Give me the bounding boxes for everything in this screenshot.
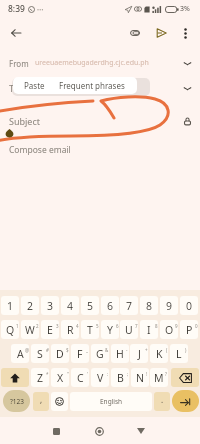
button[interactable]: P: [180, 320, 198, 339]
staticText: _: [86, 347, 88, 353]
staticText: P: [186, 323, 193, 337]
staticText: 7: [126, 299, 133, 313]
button[interactable]: Recent apps: [44, 419, 68, 443]
staticText: N: [136, 371, 144, 385]
button[interactable]: 9: [160, 296, 178, 315]
button[interactable]: T: [81, 320, 99, 339]
button[interactable]: X: [51, 368, 69, 387]
staticText: ?123: [10, 397, 24, 406]
button[interactable]: Shift: [1, 368, 29, 387]
staticText: Z: [37, 371, 44, 385]
staticText: @: [25, 347, 29, 353]
button[interactable]: Attach file: [125, 23, 145, 43]
button[interactable]: Back: [5, 22, 27, 44]
staticText: 3: [56, 323, 59, 329]
staticText: R: [67, 323, 74, 337]
staticText: !: [146, 371, 148, 377]
staticText: Paste: [24, 80, 45, 91]
staticText: J: [138, 347, 141, 361]
button[interactable]: M: [150, 368, 168, 387]
button[interactable]: To: [0, 76, 200, 100]
button[interactable]: V: [91, 368, 109, 387]
staticText: ): [185, 347, 187, 353]
staticText: Frequent phrases: [59, 80, 125, 91]
staticText: ?: [165, 371, 167, 377]
staticText: ,: [40, 394, 43, 405]
staticText: Y: [107, 323, 113, 337]
button[interactable]: G: [91, 344, 109, 363]
staticText: 1: [16, 323, 19, 329]
button[interactable]: H: [111, 344, 129, 363]
staticText: Subject: [9, 115, 41, 127]
staticText: (: [166, 347, 168, 353]
staticText: 5: [87, 299, 94, 313]
staticText: I: [147, 323, 151, 337]
staticText: F: [77, 347, 83, 361]
staticText: W: [25, 323, 35, 337]
button[interactable]: 2: [21, 296, 39, 315]
button[interactable]: E: [41, 320, 59, 339]
button[interactable]: 0: [180, 296, 198, 315]
button[interactable]: ?123: [3, 390, 30, 412]
staticText: :: [107, 371, 109, 377]
button[interactable]: C: [71, 368, 89, 387]
staticText: 6: [107, 299, 114, 313]
button[interactable]: R: [61, 320, 79, 339]
button[interactable]: L: [170, 344, 188, 363]
staticText: V: [97, 371, 104, 385]
staticText: L: [176, 347, 182, 361]
button[interactable]: Paste: [13, 77, 52, 94]
button[interactable]: N: [131, 368, 149, 387]
button[interactable]: J: [130, 344, 148, 363]
button[interactable]: Q: [1, 320, 19, 339]
staticText: -: [126, 347, 128, 353]
button[interactable]: 3: [41, 296, 59, 315]
button[interactable]: Backspace: [171, 368, 199, 387]
button[interactable]: Subject: [0, 109, 200, 133]
staticText: 5: [96, 323, 99, 329]
button[interactable]: ,: [33, 392, 49, 411]
staticText: To: [9, 82, 19, 94]
button[interactable]: 7: [120, 296, 138, 315]
staticText: 8: [155, 323, 158, 329]
button[interactable]: 1: [1, 296, 19, 315]
button[interactable]: K: [150, 344, 168, 363]
staticText: ": [67, 371, 69, 377]
button[interactable]: More options: [175, 23, 195, 43]
staticText: 2: [36, 323, 39, 329]
button[interactable]: Emoji: [51, 392, 68, 411]
button[interactable]: A: [11, 344, 29, 363]
button[interactable]: O: [160, 320, 178, 339]
button[interactable]: Home: [87, 419, 111, 443]
button[interactable]: I: [140, 320, 158, 339]
button[interactable]: B: [111, 368, 129, 387]
staticText: 4: [76, 323, 79, 329]
staticText: T: [87, 323, 93, 337]
staticText: 0: [186, 299, 193, 313]
button[interactable]: Y: [101, 320, 119, 339]
button[interactable]: Enter: [172, 390, 199, 412]
staticText: 4: [67, 299, 74, 313]
button[interactable]: 4: [61, 296, 79, 315]
button[interactable]: 5: [81, 296, 99, 315]
button[interactable]: From: [0, 52, 200, 74]
staticText: ': [87, 371, 89, 377]
button[interactable]: D: [51, 344, 69, 363]
button[interactable]: 6: [101, 296, 119, 315]
button[interactable]: S: [31, 344, 49, 363]
button[interactable]: Send: [150, 22, 172, 44]
button[interactable]: W: [21, 320, 39, 339]
button[interactable]: English: [70, 392, 152, 411]
button[interactable]: F: [71, 344, 89, 363]
button[interactable]: 8: [140, 296, 158, 315]
staticText: ureeuaemebugaderdhg.cjc.edu.ph: [35, 58, 149, 68]
button[interactable]: U: [120, 320, 138, 339]
button[interactable]: Frequent phrases: [52, 77, 137, 94]
button[interactable]: Z: [31, 368, 49, 387]
staticText: 6: [116, 323, 119, 329]
button[interactable]: Back: [129, 419, 153, 443]
button[interactable]: .: [154, 392, 170, 411]
staticText: 9: [166, 299, 173, 313]
staticText: 1: [7, 299, 14, 313]
staticText: *: [46, 371, 49, 377]
